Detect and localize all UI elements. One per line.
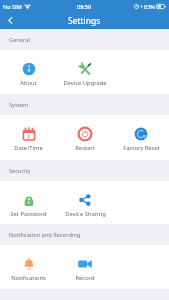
staticText: Notification and Recording — [9, 231, 81, 239]
button[interactable]: Notifications — [0, 245, 57, 289]
button[interactable]: Restart — [57, 115, 113, 160]
button[interactable]: About — [0, 50, 57, 94]
staticText: Date/Time — [14, 144, 43, 152]
staticText: 63% — [144, 3, 155, 10]
staticText: Record — [75, 274, 95, 282]
staticText: No SIM — [3, 3, 22, 10]
button[interactable]: Device Sharing — [57, 181, 113, 224]
button[interactable]: Factory Reset — [113, 115, 169, 160]
staticText: Factory Reset — [123, 144, 160, 152]
staticText: Settings — [68, 15, 101, 27]
staticText: General — [9, 36, 30, 44]
staticText: Security — [9, 167, 31, 175]
button[interactable]: Device Upgrade — [57, 50, 113, 94]
staticText: Set Password — [10, 210, 47, 218]
button[interactable]: Date/Time — [0, 115, 57, 160]
staticText: Restart — [75, 144, 95, 152]
button[interactable]: Record — [57, 245, 113, 289]
staticText: Device Upgrade — [63, 79, 107, 87]
staticText: Device Sharing — [65, 210, 106, 218]
staticText: Notifications — [11, 274, 46, 282]
staticText: About — [20, 79, 37, 87]
staticText: 09:59 — [77, 3, 92, 10]
staticText: System — [9, 101, 29, 109]
button[interactable]: Back — [0, 12, 20, 29]
button[interactable]: Set Password — [0, 181, 57, 224]
